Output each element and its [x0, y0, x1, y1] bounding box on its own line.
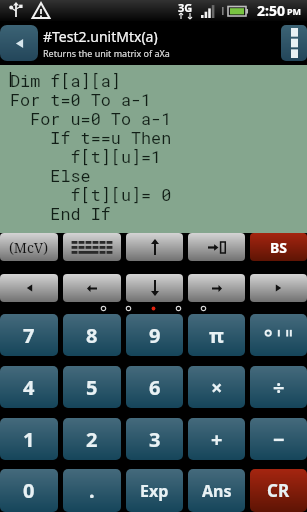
button[interactable]: Next — [250, 274, 307, 302]
staticText: Ans — [202, 480, 232, 502]
button[interactable]: Exp — [126, 469, 183, 512]
other: Next — [275, 284, 282, 292]
button[interactable]: − — [250, 418, 307, 460]
staticText: π — [209, 322, 224, 349]
button[interactable]: More options — [281, 25, 307, 61]
staticText: #Test2.unitMtx(a) — [43, 27, 158, 46]
button[interactable]: ÷ — [250, 366, 307, 408]
other: Degrees minutes seconds — [264, 329, 294, 341]
button[interactable]: × — [188, 366, 245, 408]
button[interactable]: 8 — [63, 314, 121, 356]
staticText: . — [89, 477, 95, 504]
staticText: BS — [270, 238, 288, 257]
staticText: ÷ — [273, 374, 285, 401]
staticText: 6 — [149, 374, 161, 401]
button[interactable] — [63, 274, 121, 302]
staticText: 3G — [178, 0, 193, 15]
staticText: Returns the unit matrix of aXa — [43, 47, 170, 59]
staticText: 2 — [86, 426, 98, 453]
staticText: Exp — [140, 480, 169, 502]
staticText: 7 — [23, 322, 35, 349]
button[interactable]: 7 — [0, 314, 58, 356]
button[interactable]: Degrees minutes seconds — [250, 314, 307, 356]
button[interactable] — [126, 233, 183, 261]
staticText: 8 — [86, 322, 98, 349]
staticText: − — [273, 426, 285, 453]
staticText: 9 — [149, 322, 161, 349]
button[interactable] — [188, 274, 245, 302]
staticText: × — [211, 374, 223, 401]
button[interactable]: 0 — [0, 469, 58, 512]
button[interactable]: Ans — [188, 469, 245, 512]
button[interactable] — [126, 274, 183, 302]
staticText: (McV) — [9, 238, 49, 257]
button[interactable]: 5 — [63, 366, 121, 408]
button[interactable]: 9 — [126, 314, 183, 356]
button[interactable]: Previous — [0, 274, 58, 302]
button[interactable]: (McV) — [0, 233, 58, 261]
other: Previous — [26, 284, 33, 292]
staticText: Dim f[a][a] For t=0 To a-1 For u=0 To a-… — [10, 69, 172, 225]
button[interactable]: π — [188, 314, 245, 356]
button[interactable]: + — [188, 418, 245, 460]
button[interactable]: CR — [250, 469, 307, 512]
staticText: 5 — [86, 374, 98, 401]
staticText: PM — [287, 5, 302, 17]
staticText: 1 — [23, 426, 35, 453]
staticText: 4 — [23, 374, 35, 401]
staticText: 3 — [149, 426, 161, 453]
button[interactable]: 4 — [0, 366, 58, 408]
button[interactable]: 6 — [126, 366, 183, 408]
button[interactable]: 1 — [0, 418, 58, 460]
button[interactable]: . — [63, 469, 121, 512]
staticText: + — [211, 426, 223, 453]
button[interactable]: BS — [250, 233, 307, 261]
button[interactable] — [188, 233, 245, 261]
staticText: 0 — [23, 477, 35, 504]
button[interactable]: 2 — [63, 418, 121, 460]
staticText: CR — [267, 479, 290, 502]
staticText: 2:50 — [257, 1, 285, 20]
button[interactable] — [63, 233, 121, 261]
button[interactable]: 3 — [126, 418, 183, 460]
button[interactable]: Back — [0, 25, 38, 61]
